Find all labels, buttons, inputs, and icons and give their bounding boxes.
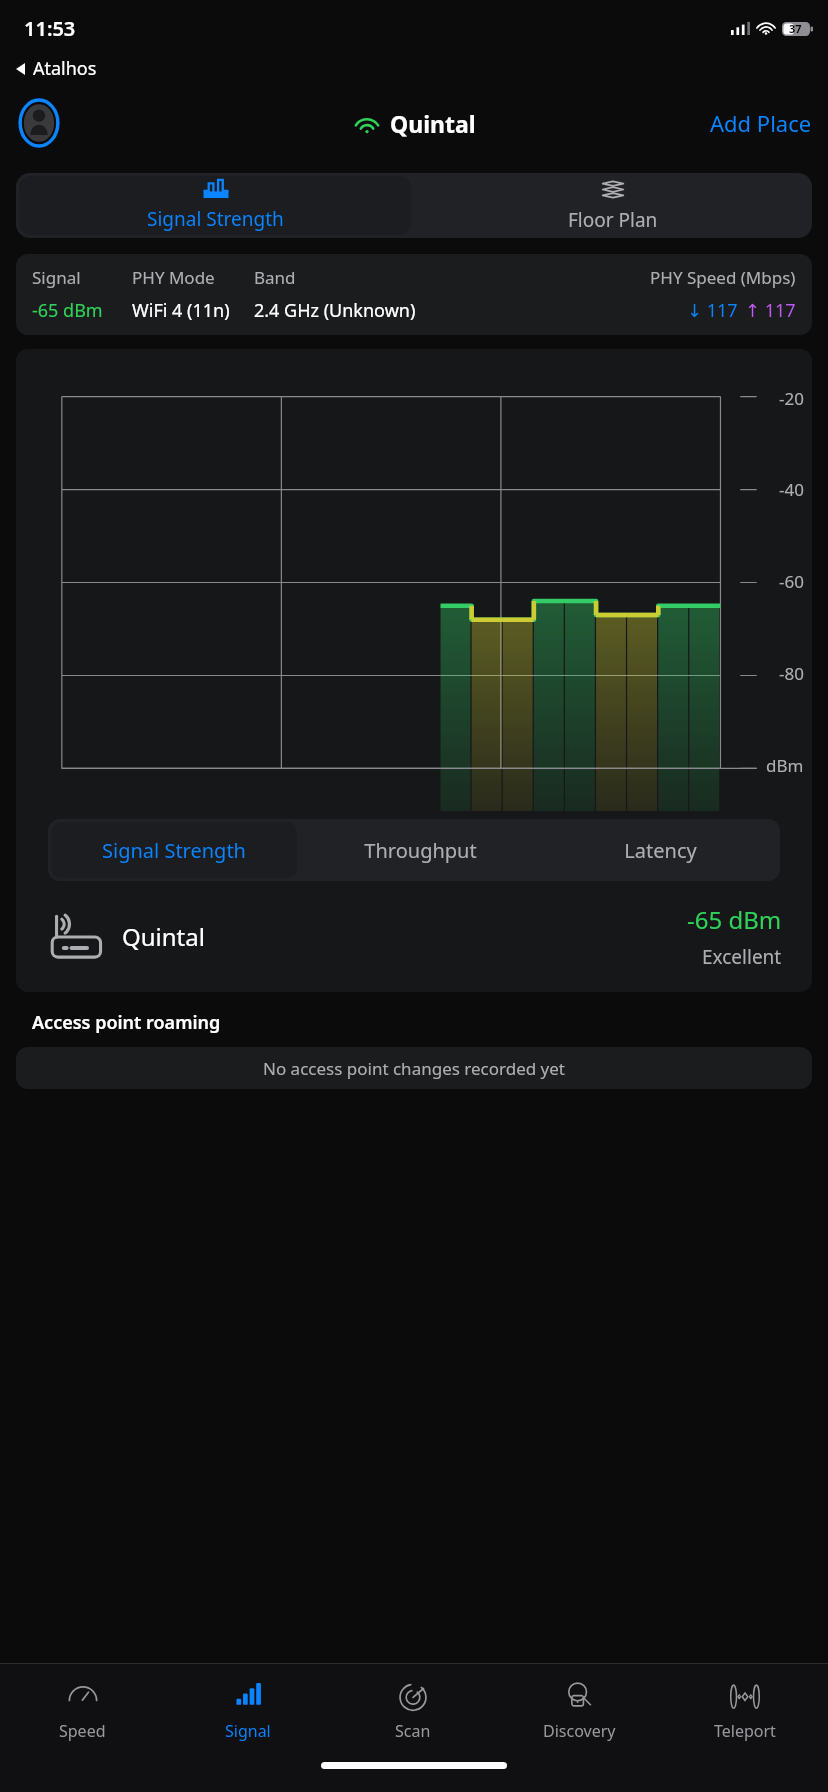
staticText: Signal Strength (102, 837, 246, 864)
button[interactable]: Profile (16, 100, 62, 146)
button[interactable]: Latency (543, 822, 777, 878)
staticText: Quintal (122, 920, 205, 953)
staticText: Floor Plan (568, 207, 658, 233)
staticText: Access point roaming (32, 1010, 221, 1035)
staticText: ↑ 117 (745, 298, 796, 323)
staticText: PHY Mode (132, 266, 254, 289)
button[interactable]: Atalhos (16, 56, 97, 81)
button[interactable]: Throughput (303, 822, 537, 878)
button[interactable]: Floor Plan (414, 173, 812, 238)
staticText: Speed (59, 1720, 106, 1742)
staticText: -60 (779, 570, 804, 593)
button[interactable]: Discovery (496, 1664, 662, 1756)
staticText: No access point changes recorded yet (263, 1057, 565, 1080)
staticText: Discovery (543, 1720, 616, 1742)
button[interactable]: Signal Strength (19, 176, 411, 235)
staticText: -80 (779, 662, 804, 685)
staticText: Scan (395, 1720, 431, 1742)
staticText: -65 dBm (687, 903, 782, 936)
staticText: 2.4 GHz (Unknown) (254, 298, 687, 323)
staticText: -40 (779, 478, 804, 501)
staticText: ↓ 117 (687, 298, 738, 323)
staticText: Band (254, 266, 650, 289)
staticText: WiFi 4 (11n) (132, 298, 254, 323)
staticText: Quintal (390, 108, 476, 139)
button[interactable]: Speed (0, 1664, 165, 1756)
staticText: 11:53 (24, 15, 76, 42)
staticText: Excellent (702, 944, 782, 970)
button[interactable]: Signal (165, 1664, 330, 1756)
staticText: Teleport (714, 1720, 776, 1742)
button[interactable]: No access point changes recorded yet (16, 1047, 812, 1089)
staticText: Add Place (710, 108, 812, 138)
staticText: -65 dBm (32, 298, 132, 323)
button[interactable]: Add Place (710, 108, 812, 138)
staticText: Latency (624, 837, 697, 864)
button[interactable]: Signal Strength (51, 822, 297, 878)
staticText: dBm (766, 754, 804, 777)
button[interactable]: Quintal (46, 903, 782, 970)
staticText: Atalhos (33, 56, 97, 81)
staticText: Signal Strength (147, 206, 284, 232)
button[interactable]: Teleport (662, 1664, 828, 1756)
staticText: -20 (779, 387, 804, 410)
staticText: Signal (32, 266, 132, 289)
button[interactable]: Scan (330, 1664, 496, 1756)
staticText: Throughput (364, 837, 477, 864)
staticText: PHY Speed (Mbps) (650, 266, 796, 289)
staticText: Signal (225, 1720, 271, 1742)
staticText: 37 (789, 21, 802, 36)
